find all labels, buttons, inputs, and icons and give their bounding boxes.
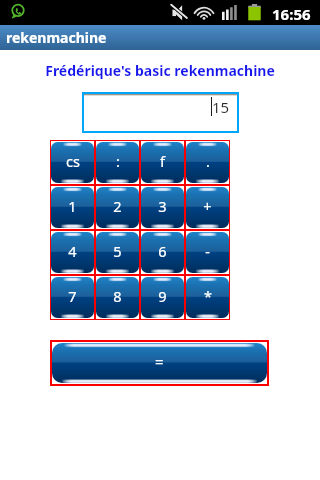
staticText: 8 (113, 286, 122, 306)
button[interactable]: 9 (141, 277, 184, 318)
staticText: 2 (113, 196, 122, 216)
button[interactable]: 1 (51, 187, 94, 228)
button[interactable]: = (52, 343, 267, 383)
button[interactable]: 4 (51, 232, 94, 273)
staticText: + (203, 196, 212, 216)
staticText: rekenmachine (6, 28, 107, 47)
staticText: cs (66, 151, 80, 171)
button[interactable]: . (186, 142, 229, 183)
button[interactable]: 3 (141, 187, 184, 228)
other: WhatsApp notification (10, 3, 26, 19)
staticText: : (116, 151, 120, 171)
staticText: * (204, 286, 212, 306)
button[interactable]: 5 (96, 232, 139, 273)
button[interactable]: * (186, 277, 229, 318)
staticText: 15 (212, 97, 230, 117)
staticText: 1 (68, 196, 77, 216)
staticText: - (205, 241, 210, 261)
staticText: 16:56 (272, 4, 311, 24)
button[interactable]: : (96, 142, 139, 183)
staticText: f (160, 151, 165, 171)
button[interactable]: 2 (96, 187, 139, 228)
staticText: 6 (158, 241, 167, 261)
button[interactable]: 8 (96, 277, 139, 318)
staticText: 7 (68, 286, 77, 306)
button[interactable]: 7 (51, 277, 94, 318)
staticText: 9 (158, 286, 167, 306)
staticText: 4 (68, 241, 77, 261)
button[interactable]: f (141, 142, 184, 183)
staticText: = (155, 351, 164, 371)
button[interactable]: 15 (84, 94, 237, 131)
button[interactable]: cs (51, 142, 94, 183)
staticText: 5 (113, 241, 122, 261)
staticText: . (206, 151, 210, 171)
staticText: Frédérique's basic rekenmachine (45, 61, 275, 80)
button[interactable]: + (186, 187, 229, 228)
button[interactable]: - (186, 232, 229, 273)
staticText: 3 (158, 196, 167, 216)
button[interactable]: 6 (141, 232, 184, 273)
